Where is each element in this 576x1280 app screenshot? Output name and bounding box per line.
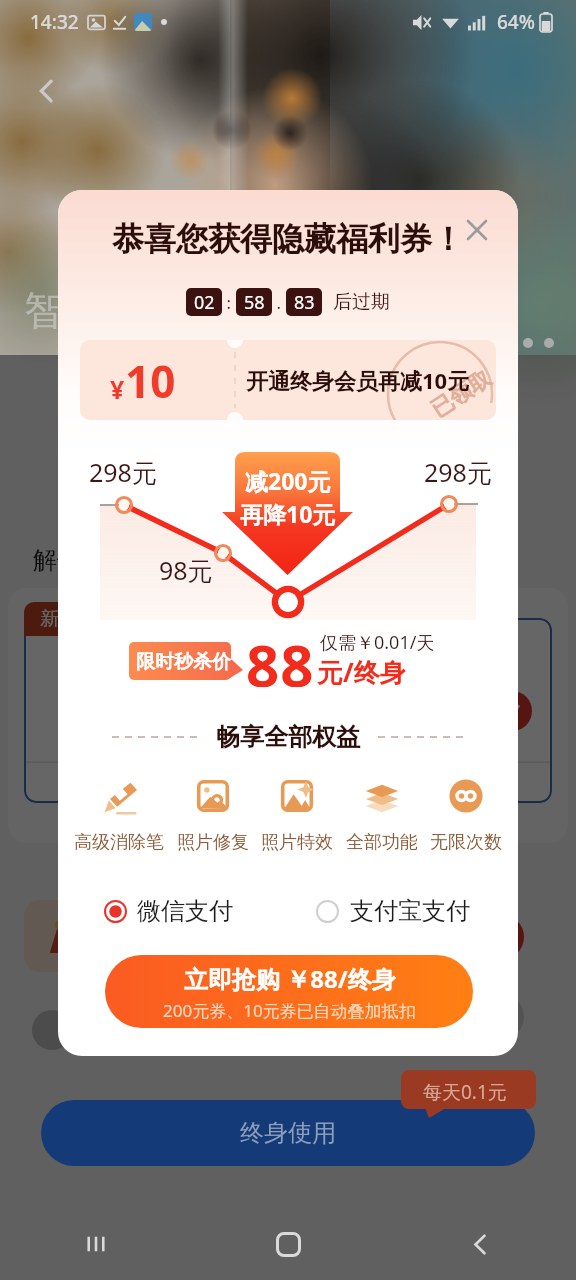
staticText: 立即抢购 ￥88/终身: [184, 962, 396, 995]
button[interactable]: 高级消除笔: [74, 776, 164, 854]
staticText: 02: [194, 290, 215, 315]
staticText: 照片特效: [261, 831, 333, 854]
staticText: ¥: [110, 372, 125, 406]
staticText: 支付宝支付: [350, 896, 470, 926]
button[interactable]: 全部功能: [346, 776, 418, 854]
button[interactable]: 无限次数: [430, 776, 502, 854]
staticText: 开通终身会员再减10元: [246, 365, 470, 395]
staticText: 高级消除笔: [74, 831, 164, 854]
staticText: 64%: [497, 9, 535, 35]
staticText: 限时秒杀价: [136, 650, 231, 674]
button[interactable]: Recent apps: [0, 1208, 192, 1280]
staticText: :: [222, 291, 236, 314]
staticText: 照片修复: [177, 831, 249, 854]
staticText: 微信支付: [137, 896, 233, 926]
staticText: 98元: [159, 553, 213, 587]
staticText: 仅需￥0.01/天: [320, 630, 435, 655]
staticText: .: [272, 291, 286, 314]
button[interactable]: Back: [384, 1208, 576, 1280]
staticText: 终身使用: [240, 1118, 336, 1148]
staticText: 无限次数: [430, 831, 502, 854]
staticText: 58: [244, 290, 265, 315]
staticText: 68: [150, 650, 208, 718]
staticText: 减200元: [245, 465, 331, 496]
staticText: 298元: [424, 455, 492, 489]
button[interactable]: 支付宝支付: [316, 894, 470, 928]
staticText: 后过期: [333, 290, 390, 314]
staticText: 已领取: [426, 364, 496, 420]
button[interactable]: 终身使用: [41, 1100, 535, 1166]
button[interactable]: Home: [192, 1208, 384, 1280]
button[interactable]: 照片修复: [177, 776, 249, 854]
staticText: 每天0.1元: [423, 1079, 507, 1105]
button[interactable]: Back: [26, 70, 68, 112]
staticText: 200元券、10元券已自动叠加抵扣: [163, 999, 416, 1022]
staticText: 元/终身: [317, 654, 406, 690]
button[interactable]: 微信支付: [104, 894, 233, 928]
staticText: 14:32: [30, 9, 79, 35]
staticText: 全部功能: [346, 831, 418, 854]
staticText: 新用户特惠: [40, 607, 135, 631]
staticText: ￥: [124, 666, 150, 699]
staticText: 83: [294, 290, 315, 315]
staticText: 解锁会员尊享特权，畅享无限次高清打印: [33, 545, 465, 575]
staticText: 88: [246, 625, 315, 687]
staticText: 10: [125, 351, 176, 411]
staticText: 298元: [89, 455, 157, 489]
staticText: 畅享全部权益: [216, 722, 360, 752]
staticText: 恭喜您获得隐藏福利券！: [58, 219, 518, 259]
staticText: 智能: [24, 285, 104, 335]
staticText: 再降10元: [240, 498, 336, 529]
button[interactable]: Close: [456, 209, 498, 251]
button[interactable]: 照片特效: [261, 776, 333, 854]
button[interactable]: 立即抢购 ￥88/终身: [105, 955, 473, 1028]
